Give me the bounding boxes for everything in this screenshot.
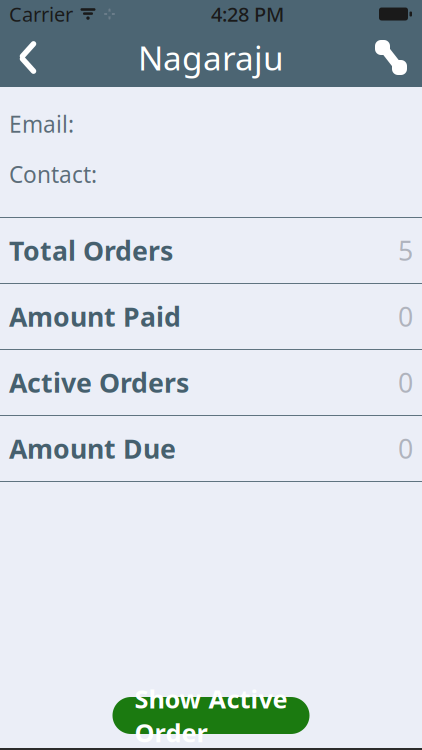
staticText: Amount Paid xyxy=(9,299,181,334)
button[interactable]: Call xyxy=(360,28,422,87)
staticText: 0 xyxy=(398,365,413,400)
staticText: Show Active Order xyxy=(134,682,287,749)
staticText: Contact: xyxy=(9,159,97,189)
button[interactable]: Show Active Order xyxy=(112,697,309,734)
staticText: Carrier xyxy=(9,1,73,27)
staticText: Active Orders xyxy=(9,365,189,400)
staticText: Email: xyxy=(9,109,74,139)
staticText: 0 xyxy=(398,431,413,466)
staticText: Total Orders xyxy=(9,233,173,268)
staticText: 0 xyxy=(398,299,413,334)
staticText: 4:28 PM xyxy=(211,1,284,27)
staticText: Amount Due xyxy=(9,431,176,466)
staticText: 5 xyxy=(398,233,413,268)
button[interactable]: Back xyxy=(0,28,56,87)
staticText: Nagaraju xyxy=(138,35,284,80)
